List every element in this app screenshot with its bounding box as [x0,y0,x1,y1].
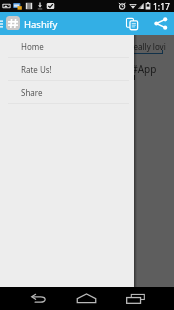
button[interactable]: Copy [122,14,141,33]
staticText: I just love this app so much, it is real… [9,41,166,52]
staticText: Hashify [24,18,58,31]
button[interactable]: Share [151,14,170,33]
button[interactable]: Back [26,287,50,310]
button[interactable]: Recent apps [123,287,147,310]
staticText: #love #instagram #photo #App [9,62,157,76]
button[interactable]: Home [74,287,98,310]
button[interactable]: Home [0,35,134,57]
staticText: 1:17 [153,1,170,13]
staticText: Share [21,87,43,98]
button[interactable]: Open navigation drawer [0,20,3,28]
staticText: Rate Us! [21,64,52,75]
button[interactable]: Share [0,81,134,103]
staticText: Home [21,41,44,52]
button[interactable]: Rate Us! [0,58,134,80]
